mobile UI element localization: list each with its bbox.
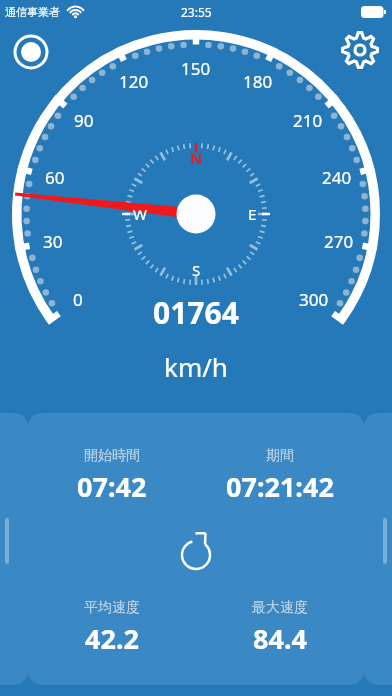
button[interactable]: Reset bbox=[174, 531, 218, 575]
button[interactable]: 開始時間 bbox=[28, 447, 196, 505]
staticText: 60 bbox=[45, 166, 65, 189]
staticText: 0 bbox=[73, 288, 83, 311]
staticText: 07:21:42 bbox=[226, 468, 334, 505]
staticText: W bbox=[133, 204, 147, 224]
staticText: 42.2 bbox=[85, 620, 139, 657]
button[interactable]: 期間 bbox=[196, 447, 364, 505]
staticText: 23:55 bbox=[181, 4, 212, 20]
staticText: N bbox=[190, 148, 203, 168]
staticText: 210 bbox=[293, 109, 323, 132]
staticText: 150 bbox=[181, 57, 211, 80]
button[interactable]: 平均速度 bbox=[28, 599, 196, 657]
staticText: 120 bbox=[119, 70, 149, 93]
staticText: 300 bbox=[299, 288, 329, 311]
staticText: km/h bbox=[164, 349, 228, 384]
staticText: 84.4 bbox=[253, 620, 307, 657]
button[interactable]: 開始時間 bbox=[28, 413, 364, 685]
button[interactable]: Start recording bbox=[9, 30, 53, 74]
staticText: E bbox=[248, 204, 257, 224]
staticText: 開始時間 bbox=[84, 447, 140, 465]
staticText: 期間 bbox=[266, 447, 294, 465]
button[interactable] bbox=[364, 413, 392, 685]
staticText: 240 bbox=[322, 166, 352, 189]
button[interactable] bbox=[0, 413, 28, 685]
button[interactable]: 最大速度 bbox=[196, 599, 364, 657]
staticText: S bbox=[192, 260, 201, 280]
staticText: 平均速度 bbox=[84, 599, 140, 617]
button[interactable]: Settings bbox=[337, 27, 383, 73]
staticText: 180 bbox=[243, 70, 273, 93]
staticText: 01764 bbox=[153, 292, 239, 333]
staticText: 30 bbox=[43, 230, 63, 253]
staticText: 90 bbox=[74, 109, 94, 132]
staticText: 270 bbox=[324, 230, 354, 253]
staticText: 通信事業者 bbox=[5, 5, 60, 19]
staticText: 最大速度 bbox=[252, 599, 308, 617]
staticText: 07:42 bbox=[77, 468, 147, 505]
